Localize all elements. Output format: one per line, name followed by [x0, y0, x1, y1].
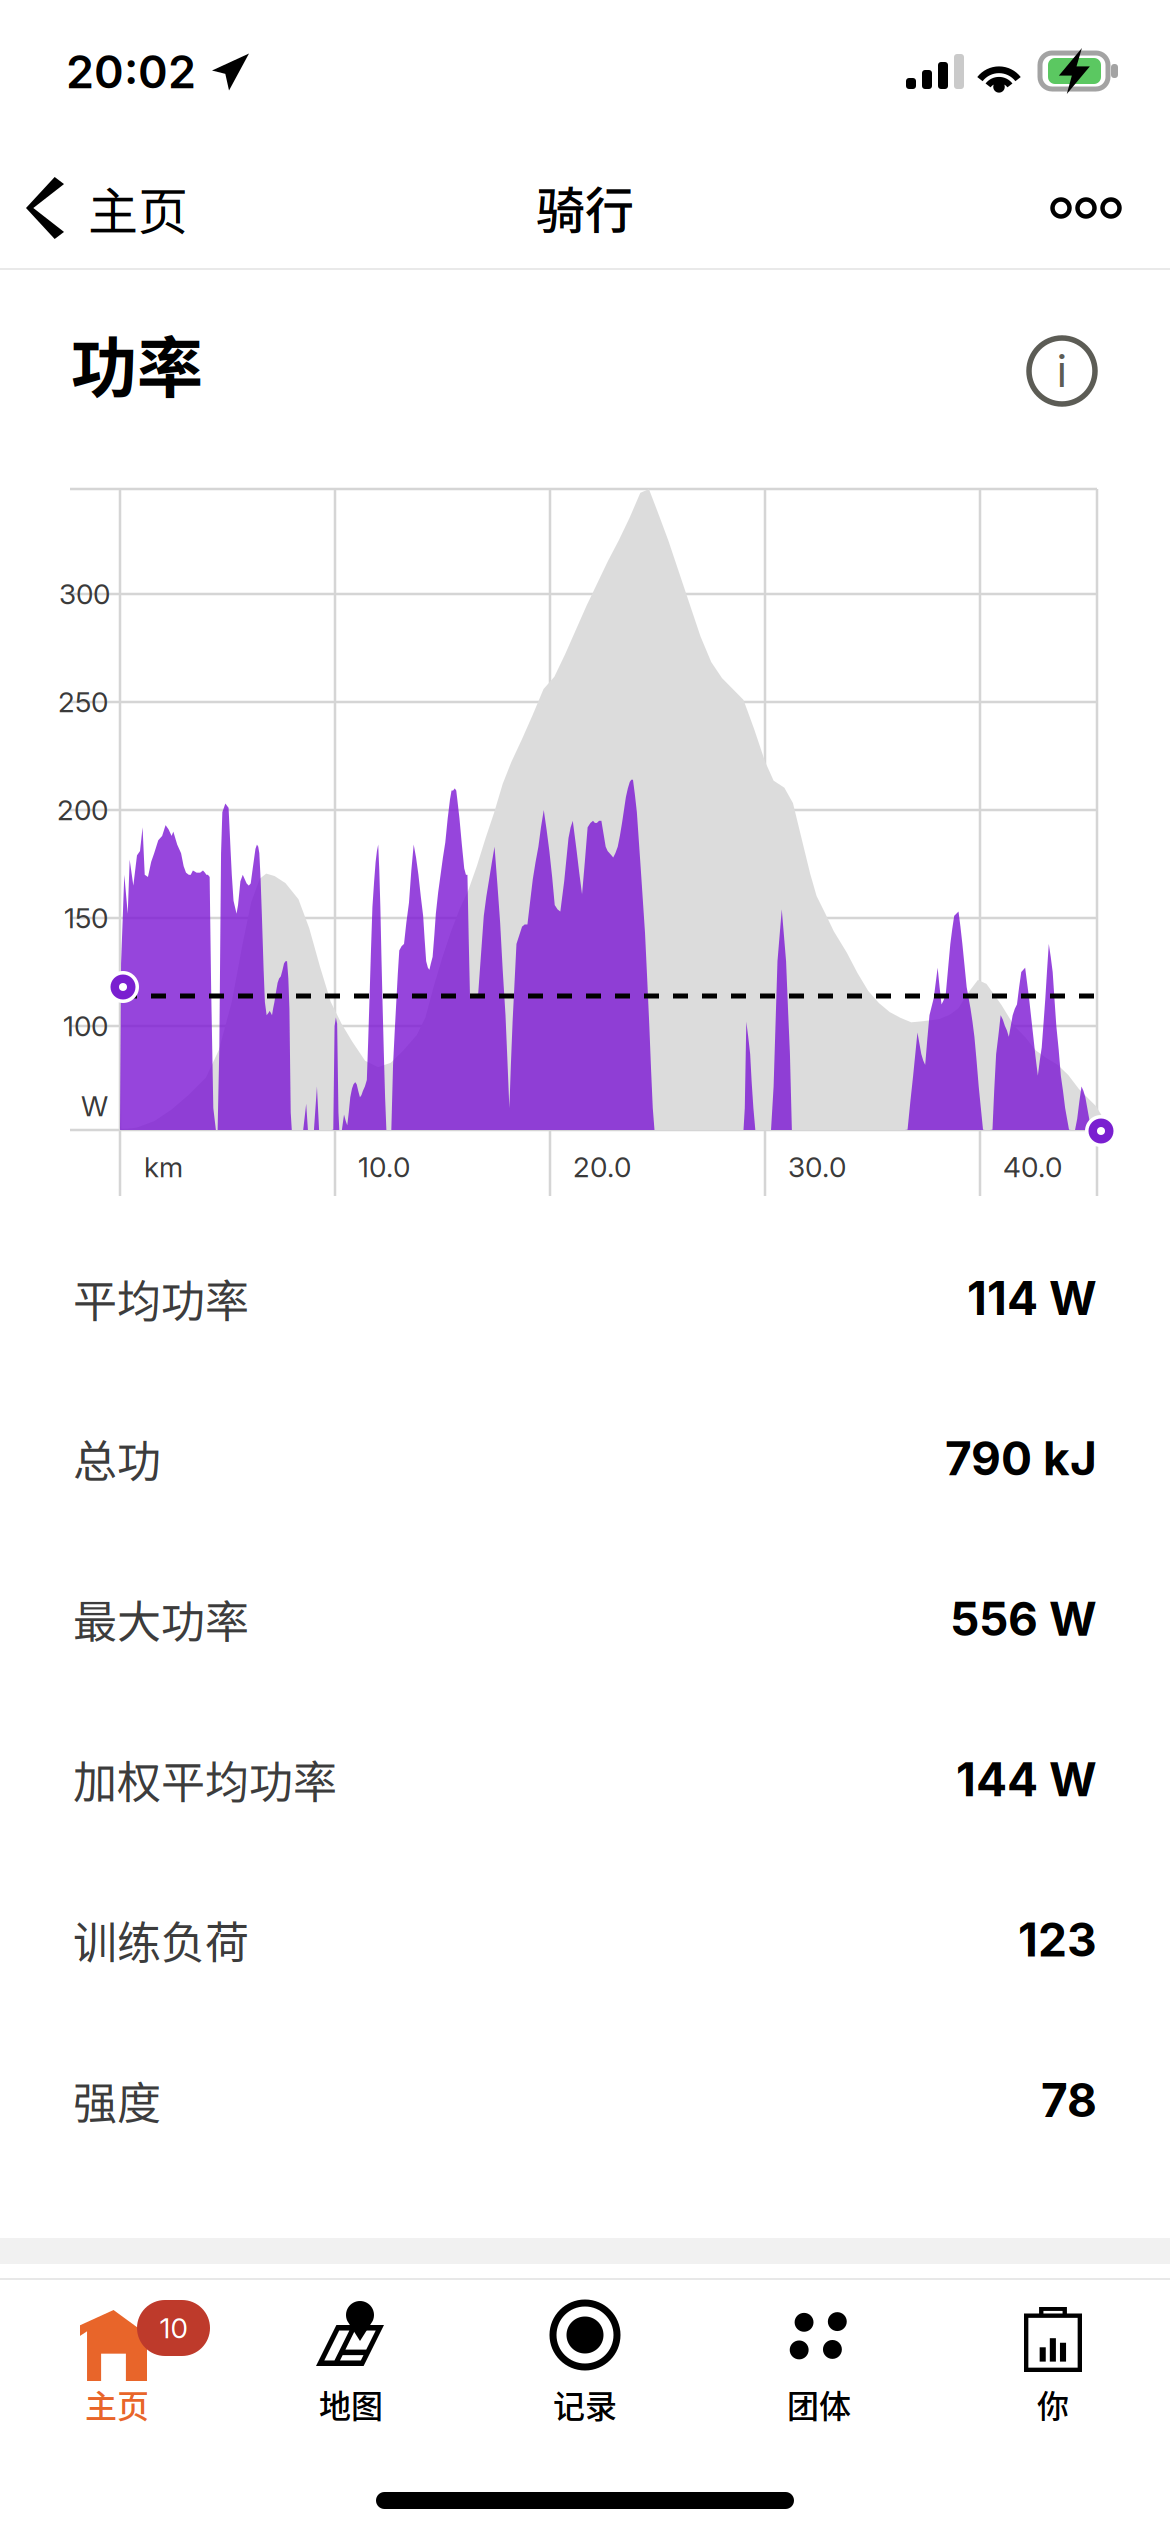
staticText: 最大功率: [73, 1587, 249, 1651]
button[interactable]: 地图: [234, 2290, 468, 2450]
button[interactable]: 10: [0, 2290, 234, 2450]
staticText: 114 W: [967, 1270, 1097, 1326]
staticText: 10.0: [358, 1150, 410, 1184]
staticText: 20:02: [66, 45, 196, 99]
staticText: 你: [1037, 2381, 1069, 2427]
staticText: 总功: [73, 1427, 161, 1490]
staticText: 地图: [319, 2381, 383, 2427]
staticText: 790 kJ: [945, 1431, 1097, 1486]
staticText: 平均功率: [73, 1266, 249, 1330]
staticText: 10: [159, 2311, 187, 2345]
staticText: 200: [57, 793, 108, 827]
staticText: i: [1056, 344, 1067, 398]
staticText: 123: [1018, 1912, 1097, 1968]
staticText: km: [144, 1150, 183, 1184]
staticText: 144 W: [956, 1752, 1097, 1807]
staticText: 主页: [88, 172, 188, 244]
button[interactable]: 你: [936, 2290, 1170, 2450]
staticText: 78: [1041, 2072, 1097, 2128]
staticText: 30.0: [788, 1150, 846, 1184]
staticText: 556 W: [950, 1591, 1097, 1647]
staticText: 40.0: [1003, 1150, 1062, 1184]
staticText: W: [81, 1089, 108, 1123]
staticText: 功率: [71, 315, 203, 411]
staticText: 强度: [73, 2068, 161, 2132]
button[interactable]: 团体: [702, 2290, 936, 2450]
staticText: 记录: [553, 2381, 617, 2427]
staticText: 训练负荷: [73, 1908, 249, 1972]
button[interactable]: Info: [1007, 316, 1117, 426]
staticText: 骑行: [536, 171, 634, 242]
button[interactable]: 记录: [468, 2290, 702, 2450]
staticText: 300: [59, 577, 110, 611]
staticText: 团体: [787, 2381, 851, 2427]
staticText: 100: [63, 1009, 108, 1043]
staticText: 150: [64, 901, 108, 935]
button[interactable]: 主页: [0, 148, 300, 268]
button[interactable]: More options: [1006, 148, 1166, 268]
staticText: 20.0: [573, 1150, 631, 1184]
staticText: 主页: [85, 2381, 149, 2427]
staticText: 加权平均功率: [73, 1747, 337, 1811]
staticText: 250: [58, 685, 108, 719]
